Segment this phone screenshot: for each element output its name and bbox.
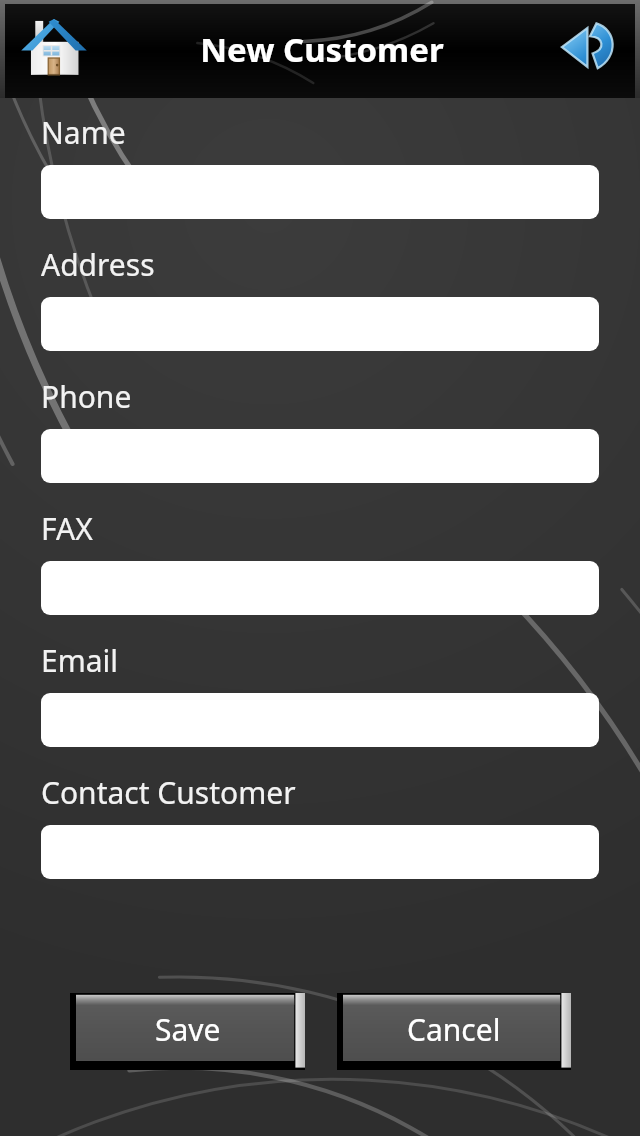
staticText: Address <box>41 244 155 285</box>
staticText: New Customer <box>94 27 550 72</box>
staticText: Email <box>41 640 119 681</box>
button[interactable]: FAX <box>41 561 599 615</box>
button[interactable]: Email <box>41 693 599 747</box>
staticText: Cancel <box>407 1009 501 1050</box>
button[interactable]: Name <box>41 165 599 219</box>
staticText: Phone <box>41 376 132 417</box>
button[interactable]: Home <box>14 9 94 89</box>
button[interactable]: Back <box>550 9 630 89</box>
button[interactable]: Save <box>70 993 305 1070</box>
staticText: Contact Customer <box>41 772 296 813</box>
staticText: Name <box>41 112 126 153</box>
button[interactable]: Phone <box>41 429 599 483</box>
staticText: FAX <box>41 508 93 549</box>
button[interactable]: Contact Customer <box>41 825 599 879</box>
button[interactable]: Address <box>41 297 599 351</box>
staticText: Save <box>155 1009 221 1050</box>
button[interactable]: Cancel <box>337 993 571 1070</box>
